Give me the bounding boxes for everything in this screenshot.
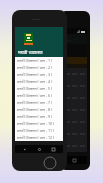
staticText: मराठी व्याकरण ( भाग - 5 ) [17, 86, 53, 91]
staticText: ( भाग - 1 ) [63, 38, 78, 43]
button[interactable]: मराठी व्याकरण ( भाग - 9 ) [15, 113, 63, 120]
button[interactable]: मराठी व्याकरण ( भाग - 7 ) [15, 99, 63, 106]
button[interactable]: मराठी व्याकरण ( भाग - 2 ) [15, 64, 63, 71]
staticText: मराठी व्याकरण ( भाग - 1 ) [17, 58, 53, 63]
button[interactable] [62, 92, 87, 104]
other: Recents [73, 159, 76, 162]
button[interactable] [62, 140, 87, 152]
staticText: मराठी व्याकरण [18, 49, 43, 55]
other: Home button [43, 156, 57, 170]
other: Home [38, 148, 41, 151]
button[interactable]: मराठी व्याकरण ( भाग - 10 ) [15, 120, 63, 127]
staticText: मराठी व्याकरण ( भाग - 4 ) [17, 79, 53, 84]
staticText: मराठी व्याकरण ( भाग - 9 ) [17, 114, 53, 119]
staticText: मराठी व्याकरण ( भाग - 7 ) [17, 100, 53, 105]
button[interactable]: मराठी व्याकरण ( भाग - 6 ) [15, 92, 63, 99]
button[interactable] [62, 116, 87, 128]
button[interactable] [62, 128, 87, 140]
staticText: मराठी व्याकरण ( भाग - 11 ) [17, 128, 55, 133]
button[interactable]: मराठी व्याकरण ( भाग - 1 ) [15, 57, 63, 64]
other: Back [23, 148, 26, 151]
staticText: मराठी व्याकरण ( भाग - 3 ) [17, 72, 53, 77]
staticText: मराठी व्याकरण ( भाग - 2 ) [17, 65, 53, 70]
button[interactable]: मराठी व्याकरण ( भाग - 5 ) [15, 85, 63, 92]
button[interactable]: मराठी व्याकरण ( भाग - 3 ) [15, 71, 63, 78]
button[interactable] [62, 80, 87, 92]
button[interactable]: मराठी व्याकरण ( भाग - 4 ) [15, 78, 63, 85]
other: Recents [52, 148, 55, 151]
button[interactable]: मराठी व्याकरण ( भाग - 11 ) [15, 127, 63, 134]
staticText: मराठी व्याकरण ( भाग - 6 ) [17, 93, 53, 98]
staticText: मराठी व्याकरण ( भाग - 8 ) [17, 107, 53, 112]
button[interactable] [62, 68, 87, 80]
button[interactable] [62, 104, 87, 116]
staticText: मराठी व्याकरण ( भाग - 10 ) [17, 121, 55, 126]
staticText: मराठी व्याकरण ( भाग - 12 ) [17, 135, 55, 140]
button[interactable]: मराठी व्याकरण ( भाग - 12 ) [15, 134, 63, 141]
button[interactable]: मराठी व्याकरण ( भाग - 8 ) [15, 106, 63, 113]
